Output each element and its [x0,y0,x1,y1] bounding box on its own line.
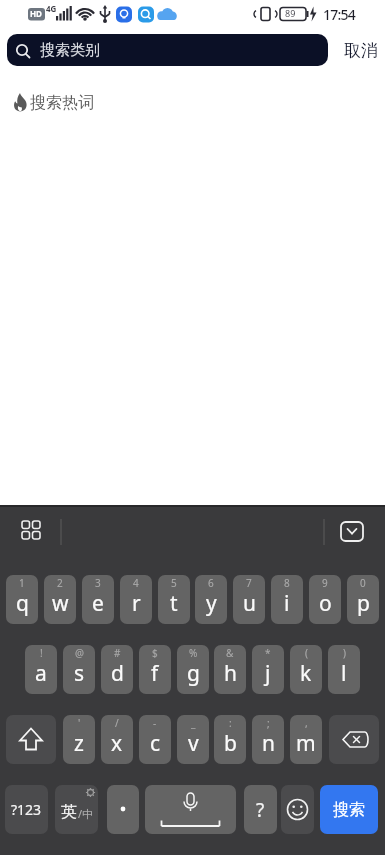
staticText: 搜索热词 [30,93,94,113]
staticText: 6 [208,576,214,590]
staticText: f [151,659,159,688]
button[interactable]: $ [139,645,171,694]
staticText: ! [40,646,43,660]
staticText: ; [267,716,270,730]
button[interactable]: 搜索类别 [7,34,328,66]
staticText: 3 [95,576,101,590]
button[interactable] [329,715,379,764]
staticText: w [52,589,69,618]
staticText: k [300,659,312,688]
staticText: $ [152,646,158,660]
button[interactable]: ) [328,645,360,694]
staticText: u [243,589,256,618]
button[interactable]: , [290,715,322,764]
button[interactable]: # [101,645,133,694]
button[interactable] [281,785,314,834]
staticText: i [284,589,290,618]
button[interactable]: ( [290,645,322,694]
staticText: ) [343,646,346,660]
staticText: p [357,589,370,618]
staticText: ?123 [11,800,42,819]
button[interactable]: % [177,645,209,694]
staticText: o [319,589,332,618]
button[interactable]: - [139,715,171,764]
staticText: t [170,589,178,618]
button[interactable]: 3 [82,575,114,624]
staticText: a [35,659,47,688]
staticText: / [115,716,119,730]
button[interactable] [107,785,139,834]
staticText: l [341,659,347,688]
staticText: @ [75,646,84,660]
button[interactable]: * [252,645,284,694]
staticText: 9 [322,576,328,590]
staticText: s [74,659,85,688]
button[interactable]: : [214,715,246,764]
staticText: - [153,716,157,730]
staticText: 搜索类别 [40,41,100,60]
staticText: y [206,589,217,618]
button[interactable]: 5 [158,575,190,624]
button[interactable]: @ [63,645,95,694]
button[interactable]: 1 [6,575,38,624]
staticText: _ [191,716,196,730]
staticText: : [229,716,232,730]
button[interactable]: 4 [120,575,152,624]
button[interactable]: 8 [271,575,303,624]
staticText: j [265,659,271,688]
button[interactable]: 2 [44,575,76,624]
staticText: e [92,589,104,618]
button[interactable]: / [101,715,133,764]
staticText: r [132,589,141,618]
staticText: # [114,646,121,660]
button[interactable]: ?123 [5,785,48,834]
staticText: 0 [360,576,366,590]
button[interactable]: & [214,645,246,694]
button[interactable] [145,785,236,834]
staticText: z [74,729,84,758]
button[interactable]: 0 [347,575,379,624]
staticText: ' [78,716,81,730]
staticText: 17:54 [323,5,355,24]
button[interactable]: ! [25,645,57,694]
staticText: /中 [78,806,94,821]
staticText: m [296,729,316,758]
staticText: g [187,659,200,688]
staticText: 89 [285,7,296,19]
staticText: v [188,729,199,758]
button[interactable]: 搜索 [320,785,378,834]
staticText: 8 [284,576,290,590]
staticText: 英 [61,802,77,822]
button[interactable]: ; [252,715,284,764]
staticText: 4 [133,576,139,590]
staticText: 取消 [344,40,378,61]
staticText: % [189,646,198,660]
staticText: 2 [57,576,63,590]
staticText: * [265,646,271,660]
staticText: h [224,659,237,688]
button[interactable]: _ [177,715,209,764]
button[interactable]: 7 [233,575,265,624]
staticText: b [224,729,237,758]
staticText: ? [256,797,265,823]
staticText: n [262,729,275,758]
button[interactable]: ' [63,715,95,764]
button[interactable]: 6 [195,575,227,624]
staticText: 4G [46,3,57,14]
staticText: ( [305,646,308,660]
staticText: 搜索 [333,800,365,820]
staticText: 7 [246,576,252,590]
button[interactable]: ? [244,785,277,834]
button[interactable] [6,715,56,764]
staticText: HD [30,8,42,19]
button[interactable]: 取消 [336,34,385,66]
staticText: , [305,716,308,730]
button[interactable]: 9 [309,575,341,624]
staticText: 5 [171,576,177,590]
button[interactable]: 英 [55,785,98,834]
staticText: c [150,729,161,758]
staticText: d [111,659,124,688]
staticText: & [226,646,234,660]
staticText: x [111,729,123,758]
staticText: 1 [19,576,25,590]
